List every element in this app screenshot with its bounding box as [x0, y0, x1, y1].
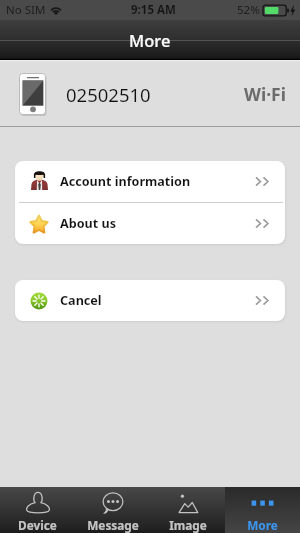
button[interactable]: About us [15, 203, 285, 244]
other: More [250, 491, 276, 514]
button[interactable]: Account information [15, 161, 285, 202]
other: Device [25, 491, 51, 514]
staticText: Account information [60, 173, 191, 190]
button[interactable]: More [225, 487, 300, 533]
staticText: About us [60, 215, 116, 232]
staticText: 9:15 AM [131, 2, 176, 18]
staticText: Cancel [60, 292, 102, 309]
other: Image [175, 491, 201, 514]
staticText: No SIM [6, 2, 46, 18]
other: Message [100, 491, 126, 514]
button[interactable]: Image [150, 487, 225, 533]
staticText: Device [18, 517, 57, 533]
staticText: More [247, 517, 278, 533]
staticText: Image [169, 517, 207, 533]
staticText: More [129, 29, 171, 51]
staticText: Message [87, 517, 139, 533]
button[interactable]: Device [0, 487, 75, 533]
button[interactable]: Cancel [15, 280, 285, 321]
staticText: 52% [237, 2, 260, 18]
staticText: Wi·Fi [244, 82, 286, 106]
button[interactable]: 02502510 [0, 62, 300, 126]
button[interactable]: Message [75, 487, 150, 533]
staticText: 02502510 [66, 82, 151, 107]
